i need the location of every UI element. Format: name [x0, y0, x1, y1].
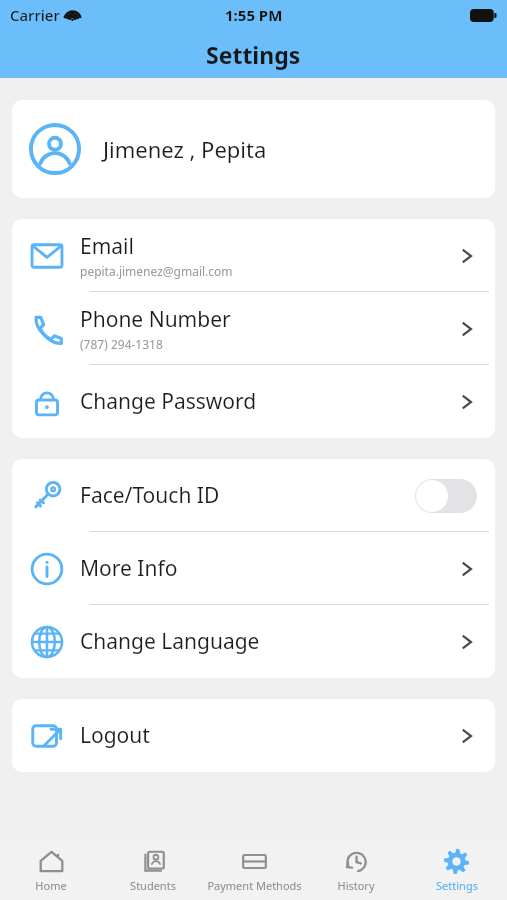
staticText: Home [35, 878, 67, 893]
button[interactable]: Face/Touch ID [12, 459, 495, 532]
staticText: (787) 294-1318 [80, 336, 163, 352]
staticText: Email [80, 232, 134, 261]
staticText: Settings [206, 39, 301, 70]
button[interactable]: Home [0, 840, 102, 900]
staticText: Payment Methods [207, 878, 302, 893]
staticText: Change Language [80, 627, 260, 656]
button[interactable]: History [305, 840, 406, 900]
staticText: pepita.jimenez@gmail.com [80, 263, 233, 279]
staticText: Change Password [80, 387, 257, 416]
button[interactable]: Jimenez , Pepita [12, 100, 495, 198]
button[interactable]: Change Language [12, 605, 495, 678]
button[interactable]: Students [102, 840, 204, 900]
staticText: Logout [80, 721, 150, 750]
button[interactable]: Email [12, 219, 495, 292]
staticText: Face/Touch ID [80, 481, 220, 510]
staticText: History [337, 878, 375, 893]
staticText: Jimenez , Pepita [103, 134, 267, 164]
button[interactable]: Change Password [12, 365, 495, 438]
button[interactable]: Logout [12, 699, 495, 772]
staticText: Settings [436, 878, 478, 893]
button[interactable]: Face/Touch ID toggle [415, 479, 477, 513]
staticText: Students [130, 878, 176, 893]
staticText: 1:55 PM [225, 5, 283, 25]
button[interactable]: Phone Number [12, 292, 495, 365]
button[interactable]: More Info [12, 532, 495, 605]
staticText: More Info [80, 554, 178, 583]
staticText: Phone Number [80, 305, 231, 334]
staticText: Carrier [10, 5, 60, 25]
button[interactable]: Settings [406, 840, 507, 900]
button[interactable]: Payment Methods [204, 840, 305, 900]
